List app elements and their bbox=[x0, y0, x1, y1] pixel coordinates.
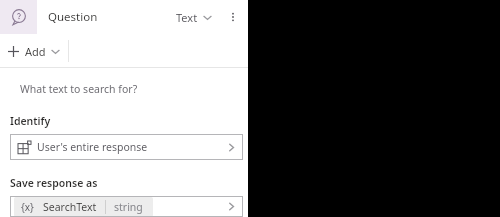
staticText: {x} bbox=[21, 200, 34, 214]
staticText: Save response as bbox=[10, 176, 98, 190]
staticText: Question bbox=[48, 9, 98, 25]
staticText: string bbox=[114, 200, 143, 214]
staticText: What text to search for? bbox=[20, 82, 138, 96]
button[interactable]: Add bbox=[0, 34, 68, 68]
button[interactable]: More options bbox=[224, 8, 242, 26]
staticText: Add bbox=[25, 44, 46, 59]
staticText: User's entire response bbox=[37, 140, 148, 154]
staticText: Text bbox=[176, 10, 198, 25]
button[interactable]: User's entire response bbox=[10, 134, 243, 160]
button[interactable]: Question type bbox=[0, 0, 37, 34]
staticText: SearchText bbox=[43, 200, 97, 214]
button[interactable]: Text bbox=[174, 10, 214, 25]
button[interactable]: {x} bbox=[10, 196, 243, 217]
staticText: Identify bbox=[10, 114, 51, 128]
